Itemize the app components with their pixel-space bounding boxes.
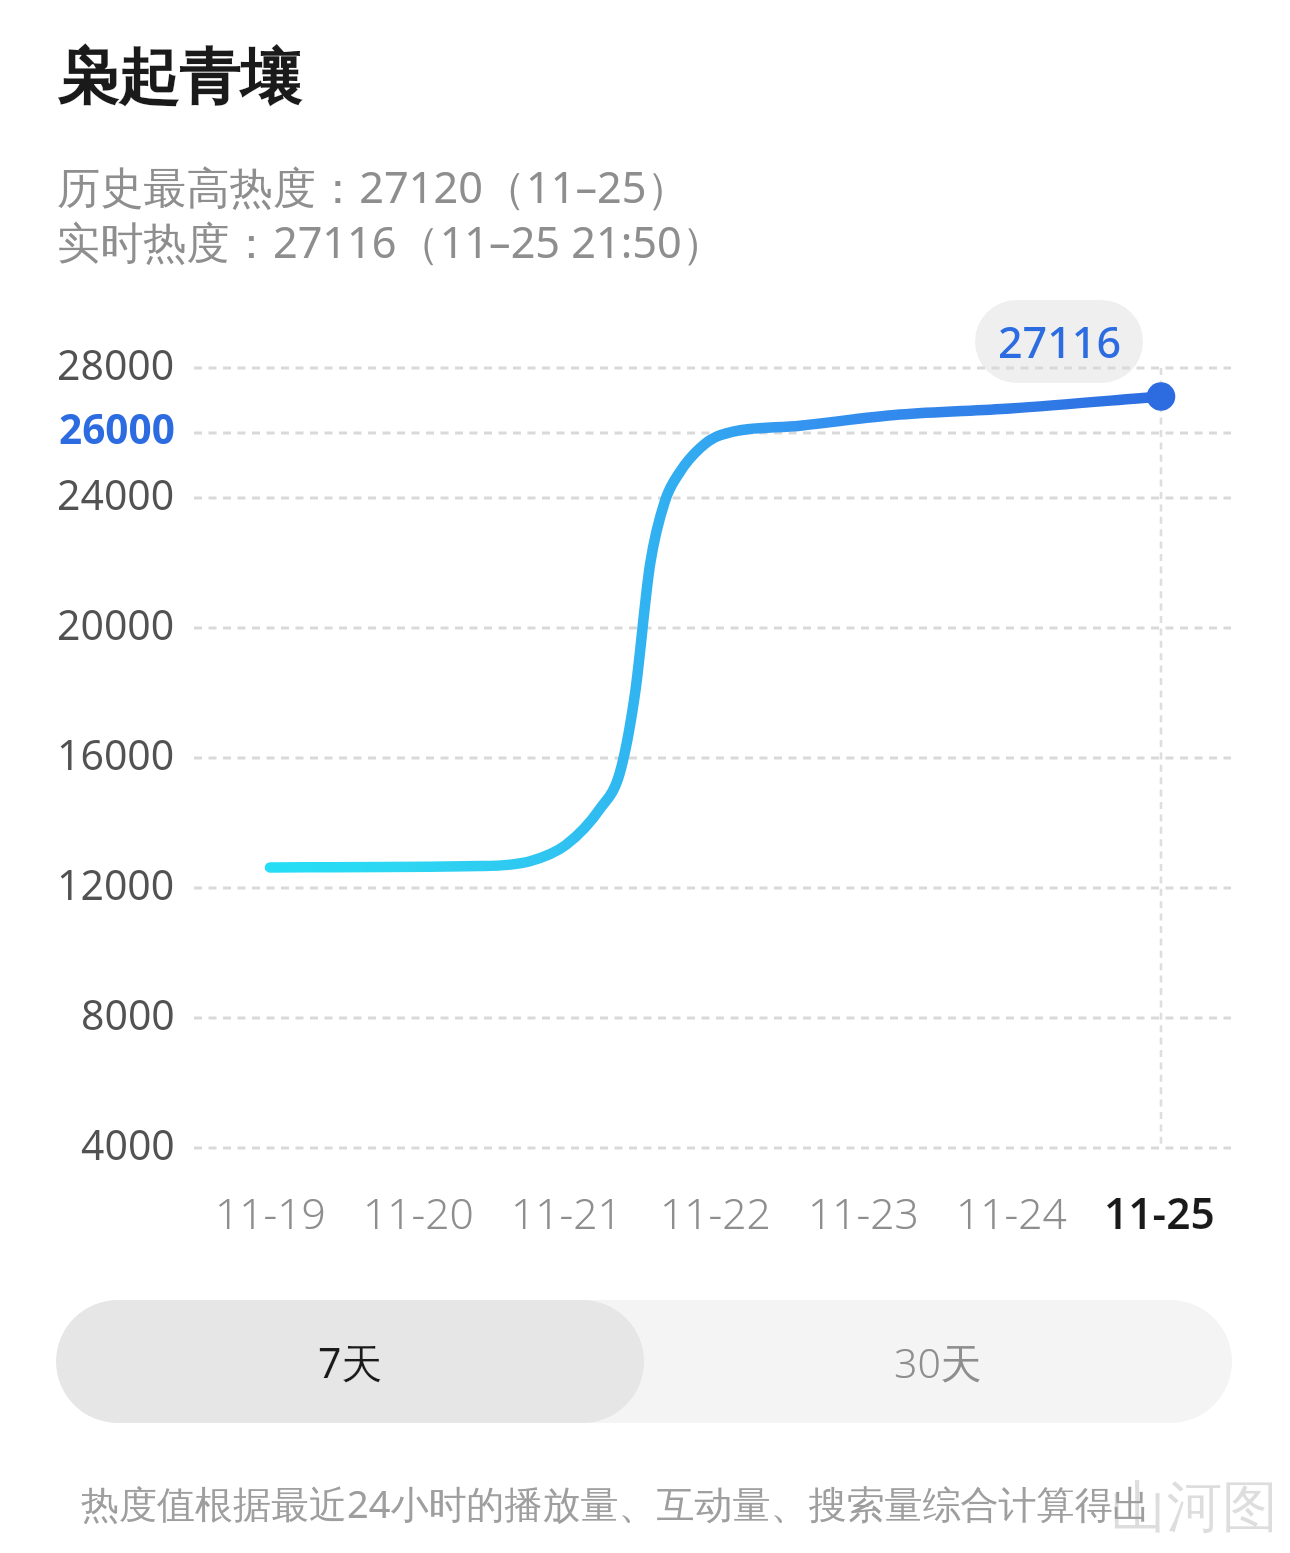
staticText: 热度值根据最近24小时的播放量、互动量、搜索量综合计算得出	[81, 1477, 1151, 1529]
staticText: 11-25	[1104, 1184, 1215, 1242]
staticText: 11-21	[511, 1184, 622, 1242]
staticText: 26000	[59, 401, 175, 456]
staticText: 11-24	[956, 1184, 1067, 1242]
staticText: 7天	[318, 1334, 383, 1390]
staticText: 12000	[57, 856, 175, 912]
staticText: 山河图	[1110, 1472, 1278, 1543]
staticText: 历史最高热度：27120（11–25）	[57, 157, 690, 216]
staticText: 16000	[57, 726, 175, 782]
staticText: 11-20	[363, 1184, 474, 1242]
staticText: 11-19	[215, 1184, 326, 1242]
staticText: 20000	[57, 596, 175, 652]
button[interactable]: 7天	[56, 1300, 644, 1423]
staticText: 枭起青壤	[57, 39, 301, 116]
staticText: 实时热度：27116（11–25 21:50）	[57, 212, 725, 271]
staticText: 8000	[81, 986, 175, 1042]
staticText: 24000	[57, 466, 175, 522]
staticText: 4000	[81, 1116, 175, 1172]
staticText: 28000	[57, 336, 175, 392]
staticText: 27116	[998, 312, 1121, 371]
button[interactable]: 当前热度 27116	[975, 300, 1143, 383]
staticText: 30天	[894, 1334, 982, 1390]
staticText: 11-23	[808, 1184, 919, 1242]
staticText: 11-22	[660, 1184, 771, 1242]
button[interactable]: 30天	[644, 1300, 1232, 1423]
